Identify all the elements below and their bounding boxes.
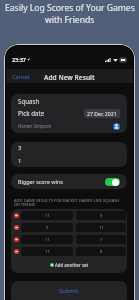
button[interactable]: Remove set — [14, 237, 19, 242]
staticText: Squash — [18, 97, 40, 105]
button[interactable]: 8 — [76, 247, 126, 256]
staticText: Add New Result — [44, 73, 95, 82]
staticText: Bigger score wins — [18, 178, 63, 185]
staticText: 8 — [100, 249, 103, 255]
button[interactable]: 11 — [21, 247, 73, 256]
staticText: Cancel — [12, 73, 30, 81]
staticText: 3 — [18, 144, 22, 152]
button[interactable]: Squash — [11, 94, 127, 107]
staticText: 11 — [45, 249, 50, 255]
staticText: Easily Log Scores of Your Games — [5, 2, 135, 14]
other: Player avatar — [113, 123, 120, 130]
button[interactable]: 1 — [11, 154, 127, 167]
button[interactable]: 7 — [76, 235, 126, 244]
button[interactable]: 3 — [11, 142, 127, 154]
staticText: 9 — [46, 225, 49, 231]
button[interactable]: 11 — [76, 223, 126, 232]
staticText: Submit — [59, 287, 79, 295]
staticText: ADD GAME RESULTS FOR RACKET GAMES LIKE S… — [14, 198, 120, 208]
button[interactable]: Remove set — [14, 249, 19, 254]
staticText: 9 — [100, 213, 103, 219]
button[interactable]: 27 Dec 2021 — [84, 109, 120, 118]
button[interactable]: 9 — [76, 211, 126, 220]
staticText: 23:37 — [12, 56, 26, 63]
staticText: 11 — [45, 213, 50, 219]
button[interactable]: 11 — [21, 235, 73, 244]
staticText: 7 — [100, 237, 103, 243]
staticText: Pick date — [18, 109, 45, 117]
button[interactable]: 11 — [21, 211, 73, 220]
staticText: 1 — [18, 157, 22, 165]
button[interactable]: Add another set — [11, 257, 127, 273]
staticText: 11 — [99, 225, 104, 231]
button[interactable]: Remove set — [14, 213, 19, 218]
button[interactable]: Pick date — [11, 107, 127, 119]
staticText: Homer Simpson — [18, 123, 52, 129]
button[interactable]: Bigger score wins — [11, 174, 127, 189]
button[interactable]: Cancel — [10, 71, 32, 83]
staticText: 11 — [45, 237, 50, 243]
staticText: with Friends — [45, 14, 95, 26]
button[interactable]: 9 — [21, 223, 73, 232]
staticText: 27 Dec 2021 — [87, 110, 117, 117]
staticText: Add another set — [55, 262, 89, 268]
button[interactable]: Remove set — [14, 225, 19, 230]
button[interactable]: Submit — [53, 285, 85, 297]
